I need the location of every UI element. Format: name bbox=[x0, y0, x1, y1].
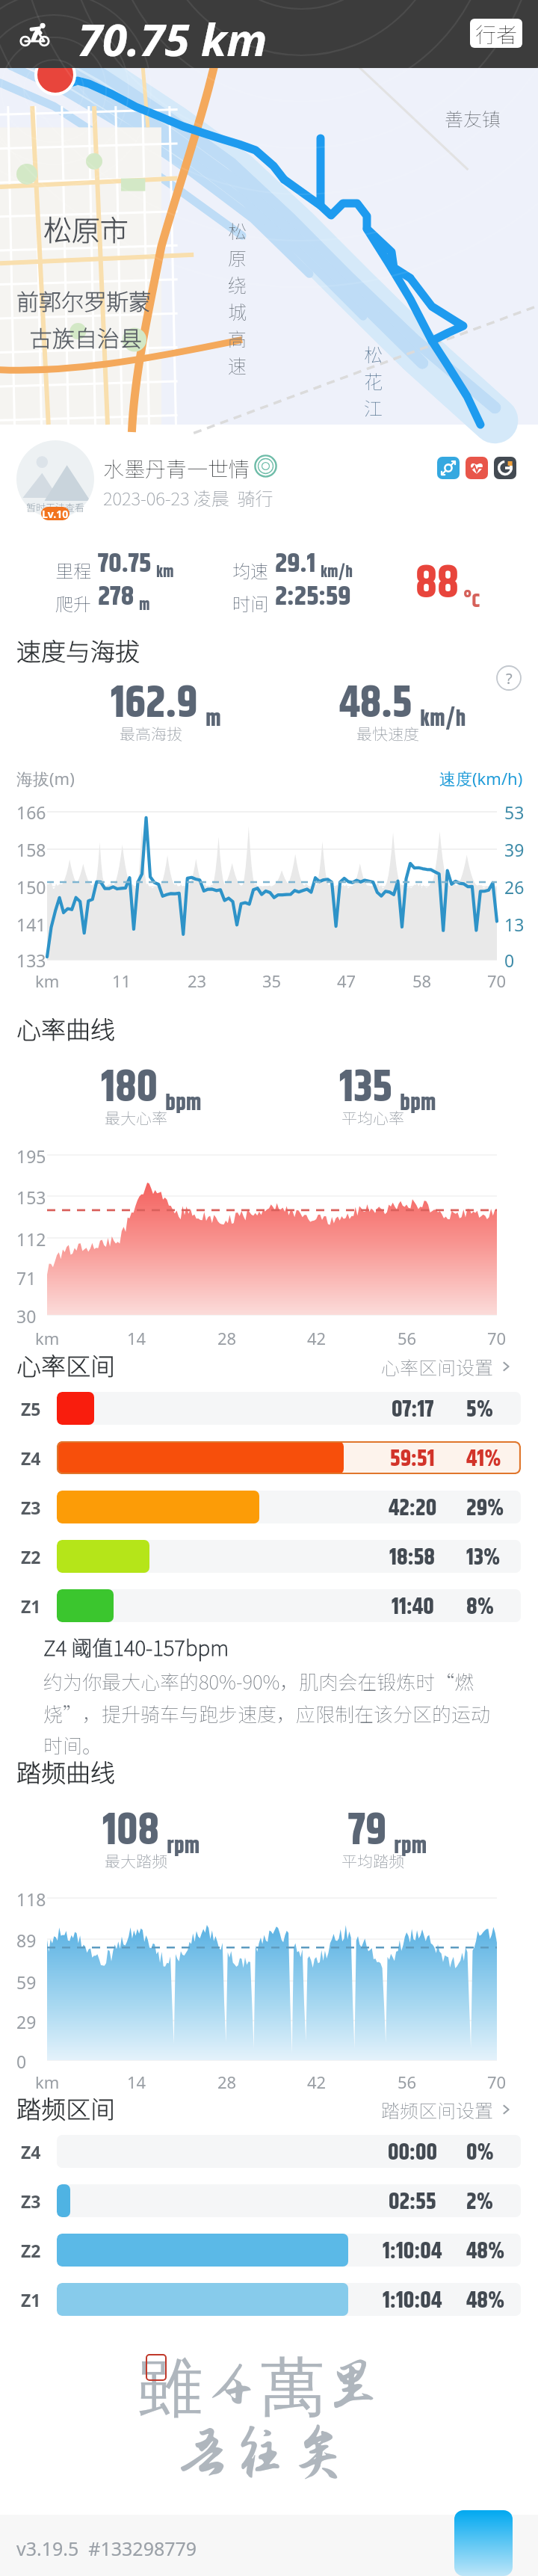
button[interactable]: Z2 bbox=[0, 1540, 538, 1573]
staticText: 速度(km/h) bbox=[439, 767, 523, 789]
staticText: m bbox=[205, 703, 221, 737]
button[interactable]: User avatar bbox=[16, 440, 94, 518]
staticText: Z2 bbox=[21, 2239, 41, 2262]
staticText: 42:20 bbox=[389, 1491, 437, 1523]
staticText: km bbox=[156, 561, 174, 585]
button[interactable]: Z2 bbox=[0, 2234, 538, 2267]
staticText: 松原市 bbox=[43, 208, 129, 249]
staticText: 13% bbox=[466, 1540, 501, 1573]
staticText: 11 bbox=[112, 970, 132, 992]
staticText: 79 bbox=[348, 1797, 386, 1866]
staticText: 1:10:04 bbox=[383, 2234, 442, 2267]
staticText: Z5 bbox=[21, 1397, 41, 1420]
staticText: 18:58 bbox=[389, 1540, 436, 1573]
staticText: 14 bbox=[127, 1327, 146, 1349]
button[interactable]: Z4 bbox=[0, 2135, 538, 2168]
staticText: 均速 bbox=[232, 557, 268, 583]
staticText: 158 bbox=[16, 838, 46, 861]
staticText: 42 bbox=[307, 1327, 327, 1349]
staticText: 0 bbox=[504, 949, 515, 972]
staticText: 89 bbox=[16, 1929, 37, 1952]
staticText: 0% bbox=[466, 2135, 494, 2168]
staticText: 162.9 bbox=[111, 670, 198, 739]
staticText: 141 bbox=[16, 913, 46, 936]
staticText: 8% bbox=[466, 1589, 495, 1622]
button[interactable]: Z3 bbox=[0, 2184, 538, 2217]
staticText: 48.5 bbox=[339, 670, 412, 739]
button[interactable]: Z1 bbox=[0, 2283, 538, 2316]
staticText: Z4 bbox=[21, 1446, 41, 1470]
staticText: Z1 bbox=[21, 2288, 41, 2311]
staticText: 30 bbox=[16, 1304, 37, 1328]
button[interactable]: Heart rate link bbox=[466, 457, 488, 479]
staticText: 70 bbox=[487, 1327, 507, 1349]
staticText: 水墨丹青一世情 bbox=[103, 453, 250, 484]
staticText: 23 bbox=[188, 970, 207, 992]
staticText: 高 bbox=[228, 324, 247, 351]
staticText: 00:00 bbox=[388, 2135, 438, 2168]
button[interactable]: Z5 bbox=[0, 1392, 538, 1425]
button[interactable]: 心率区间设置 bbox=[381, 1353, 513, 1380]
staticText: 善友镇 bbox=[445, 105, 501, 132]
staticText: 29% bbox=[466, 1491, 504, 1523]
staticText: 最快速度 bbox=[356, 722, 419, 745]
staticText: Z2 bbox=[21, 1545, 41, 1568]
button[interactable]: Strava link bbox=[437, 457, 460, 479]
staticText: 0 bbox=[16, 2050, 27, 2073]
staticText: 39 bbox=[504, 838, 525, 861]
staticText: 踏频曲线 bbox=[16, 1754, 115, 1790]
staticText: 195 bbox=[16, 1144, 46, 1168]
staticText: 150 bbox=[16, 875, 46, 899]
staticText: 88 bbox=[415, 549, 459, 619]
button[interactable]: QR code bbox=[454, 2510, 513, 2576]
staticText: 112 bbox=[16, 1227, 46, 1251]
staticText: Z4 bbox=[21, 2140, 41, 2163]
staticText: 71 bbox=[16, 1266, 37, 1289]
staticText: 心率区间设置 bbox=[381, 1353, 494, 1380]
staticText: 速度与海拔 bbox=[16, 632, 140, 668]
staticText: km/h bbox=[321, 561, 353, 585]
staticText: 278 bbox=[98, 576, 134, 618]
staticText: 绕 bbox=[228, 271, 247, 298]
staticText: 江 bbox=[364, 394, 383, 421]
button[interactable]: Help bbox=[496, 665, 522, 691]
staticText: 70.75 bbox=[98, 543, 152, 585]
staticText: 59:51 bbox=[390, 1441, 435, 1474]
staticText: Z3 bbox=[21, 1496, 41, 1519]
staticText: 07:17 bbox=[392, 1392, 434, 1425]
button[interactable]: 踏频区间设置 bbox=[381, 2096, 513, 2123]
staticText: 约为你最大心率的80%-90%，肌肉会在锻炼时“燃烧”，提升骑车与跑步速度，应限… bbox=[43, 1667, 492, 1758]
staticText: km bbox=[35, 1327, 60, 1349]
staticText: 153 bbox=[16, 1186, 46, 1209]
staticText: 42 bbox=[307, 2071, 327, 2093]
staticText: Z3 bbox=[21, 2190, 41, 2213]
button[interactable]: Z4 bbox=[0, 1441, 538, 1474]
staticText: 时间 bbox=[232, 590, 268, 616]
staticText: 5% bbox=[466, 1392, 494, 1425]
staticText: 心率曲线 bbox=[16, 1011, 115, 1047]
staticText: 古族自治县 bbox=[30, 321, 142, 353]
staticText: 58 bbox=[412, 970, 432, 992]
staticText: 松 bbox=[364, 340, 383, 367]
staticText: 最高海拔 bbox=[120, 722, 182, 745]
staticText: 海拔(m) bbox=[16, 767, 75, 789]
staticText: 02:55 bbox=[389, 2184, 436, 2217]
staticText: bpm bbox=[165, 1087, 202, 1121]
staticText: 166 bbox=[16, 801, 46, 824]
staticText: 14 bbox=[127, 2071, 146, 2093]
button[interactable]: Z3 bbox=[0, 1491, 538, 1523]
staticText: 135 bbox=[339, 1054, 392, 1123]
staticText: 26 bbox=[504, 875, 525, 899]
staticText: 最大心率 bbox=[105, 1106, 167, 1129]
staticText: km bbox=[35, 2071, 60, 2093]
staticText: 爬升 bbox=[55, 590, 91, 616]
button[interactable]: App brand bbox=[470, 19, 522, 48]
staticText: 35 bbox=[262, 970, 282, 992]
staticText: 里程 bbox=[55, 557, 91, 583]
staticText: 108 bbox=[102, 1797, 159, 1866]
button[interactable]: Garmin link bbox=[494, 457, 516, 479]
staticText: 最大踏频 bbox=[105, 1849, 167, 1872]
button[interactable]: Z1 bbox=[0, 1589, 538, 1622]
staticText: 2:25:59 bbox=[275, 576, 351, 618]
staticText: Lv.10 bbox=[42, 507, 69, 520]
